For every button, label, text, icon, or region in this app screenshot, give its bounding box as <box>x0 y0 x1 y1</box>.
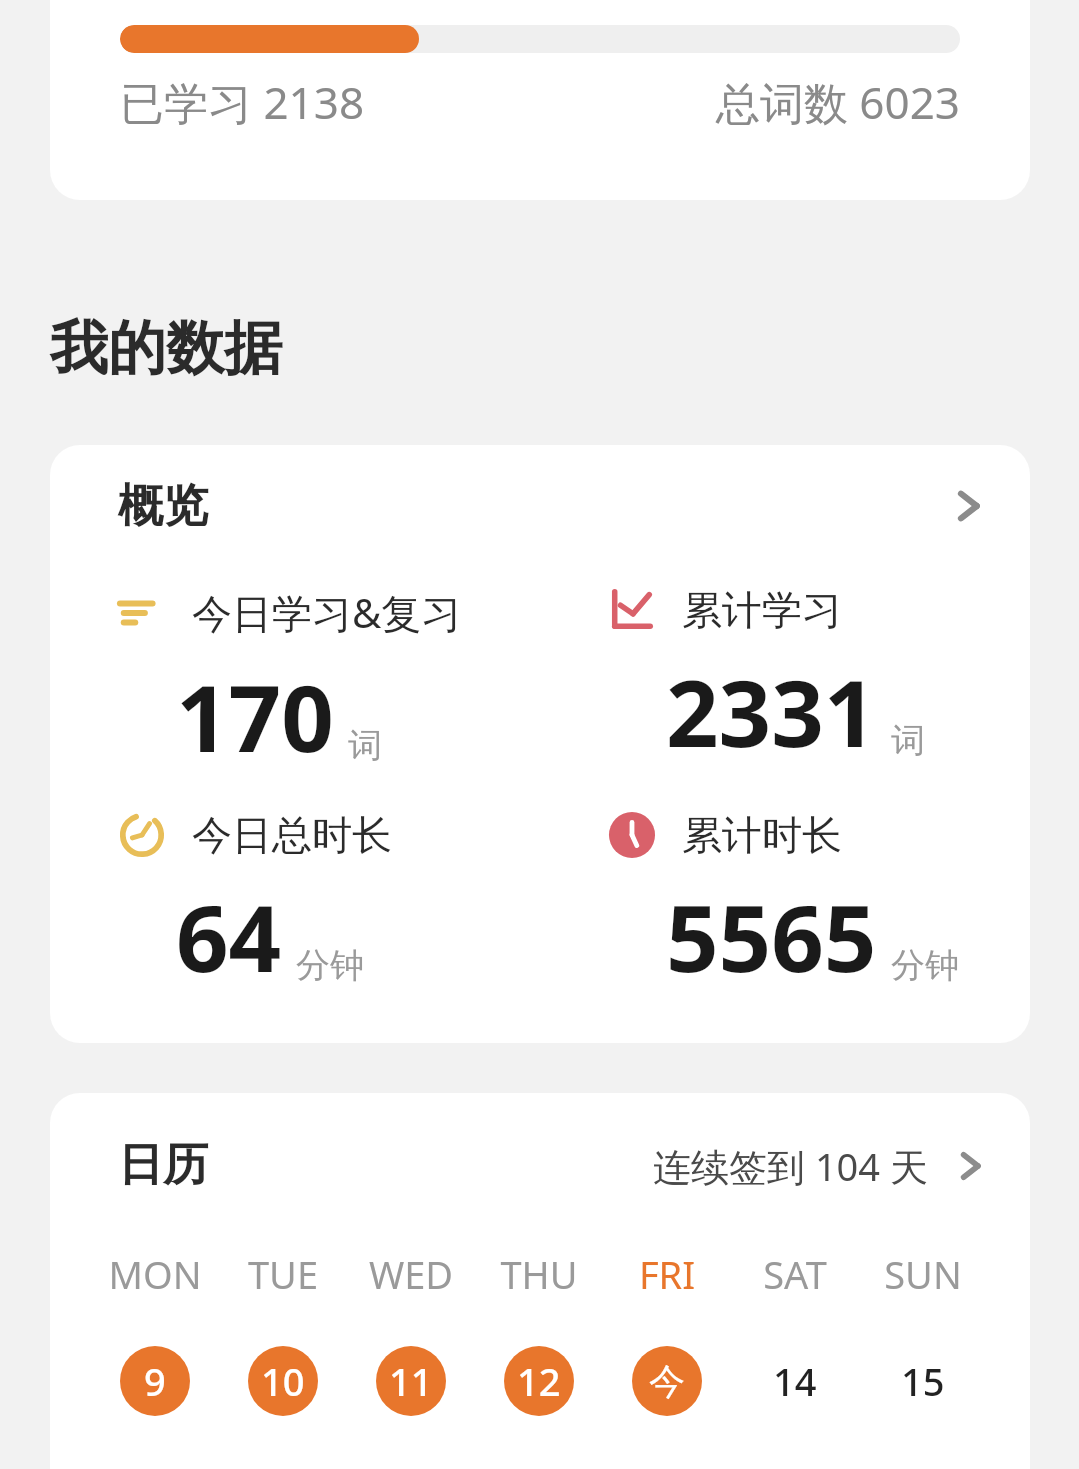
button[interactable]: 10 <box>248 1346 318 1416</box>
button[interactable]: 12 <box>504 1346 574 1416</box>
staticText: 11 <box>389 1355 433 1407</box>
staticText: SAT <box>731 1248 859 1300</box>
staticText: MON <box>91 1248 219 1300</box>
staticText: 64 <box>176 874 282 999</box>
staticText: WED <box>347 1248 475 1300</box>
button[interactable]: 已学习 2138 <box>50 0 1030 200</box>
other: 签到详情 <box>950 1146 990 1186</box>
staticText: 15 <box>901 1355 945 1407</box>
staticText: 9 <box>144 1355 166 1407</box>
staticText: TUE <box>219 1248 347 1300</box>
staticText: 分钟 <box>891 944 959 987</box>
staticText: 连续签到 104 天 <box>653 1140 928 1192</box>
staticText: 词 <box>891 719 925 762</box>
button[interactable]: 15 <box>888 1346 958 1416</box>
staticText: 概览 <box>118 478 208 535</box>
button[interactable]: 今 <box>632 1346 702 1416</box>
staticText: 10 <box>261 1355 305 1407</box>
staticText: 170 <box>176 654 334 779</box>
button[interactable]: 日历 <box>50 1093 1030 1238</box>
staticText: 今日学习&复习 <box>192 585 462 640</box>
button[interactable]: 11 <box>376 1346 446 1416</box>
staticText: 日历 <box>118 1137 208 1194</box>
other: 概览详情 <box>946 484 990 528</box>
button[interactable]: 14 <box>760 1346 830 1416</box>
staticText: 总词数 6023 <box>470 72 960 132</box>
staticText: 12 <box>517 1355 561 1407</box>
staticText: 分钟 <box>296 944 364 987</box>
staticText: SUN <box>859 1248 987 1300</box>
staticText: THU <box>475 1248 603 1300</box>
staticText: 累计学习 <box>682 585 842 635</box>
staticText: 14 <box>773 1355 817 1407</box>
button[interactable]: 概览 <box>50 445 1030 567</box>
staticText: 词 <box>348 724 382 767</box>
staticText: 今 <box>649 1359 685 1404</box>
staticText: 我的数据 <box>50 312 282 385</box>
staticText: FRI <box>603 1248 731 1300</box>
staticText: 5565 <box>666 874 877 999</box>
staticText: 已学习 2138 <box>120 72 365 132</box>
staticText: 今日总时长 <box>192 810 392 860</box>
staticText: 累计时长 <box>682 810 842 860</box>
staticText: 2331 <box>666 649 877 774</box>
button[interactable]: 9 <box>120 1346 190 1416</box>
